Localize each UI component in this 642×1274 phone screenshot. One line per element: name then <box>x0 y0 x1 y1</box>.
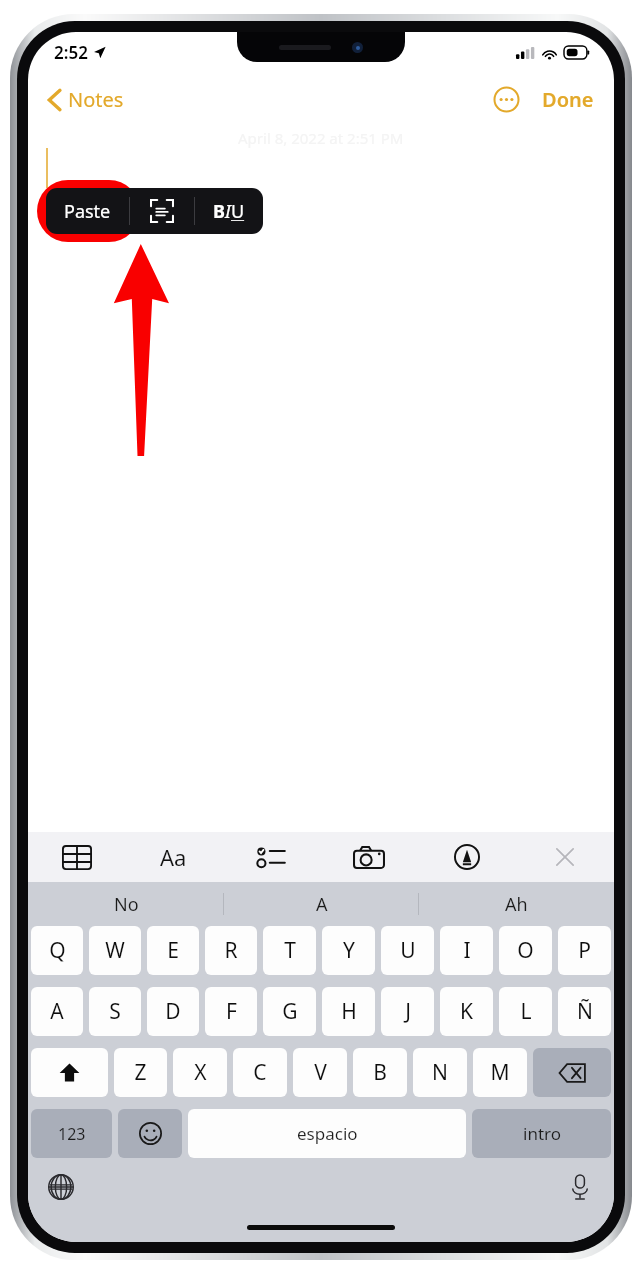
button[interactable]: No <box>28 882 224 926</box>
staticText: U <box>231 199 245 224</box>
button[interactable]: L <box>499 987 552 1036</box>
button[interactable]: Shift <box>31 1048 108 1097</box>
staticText: A <box>316 892 328 917</box>
button[interactable]: J <box>381 987 434 1036</box>
button[interactable]: Camera <box>320 832 418 882</box>
button[interactable]: A <box>31 987 83 1036</box>
button[interactable]: Dictate <box>564 1168 596 1206</box>
staticText: M <box>490 1058 510 1087</box>
staticText: W <box>105 936 125 965</box>
staticText: F <box>226 997 237 1026</box>
button[interactable]: Markup <box>418 832 516 882</box>
button[interactable]: G <box>263 987 316 1036</box>
staticText: S <box>109 997 121 1026</box>
button[interactable]: Ñ <box>558 987 611 1036</box>
staticText: X <box>194 1058 207 1087</box>
staticText: Z <box>134 1058 147 1087</box>
button[interactable]: V <box>293 1048 347 1097</box>
button[interactable]: Format <box>125 832 222 882</box>
button[interactable]: intro <box>472 1109 611 1158</box>
staticText: Notes <box>68 86 124 113</box>
staticText: K <box>460 997 473 1026</box>
staticText: E <box>167 936 179 965</box>
staticText: Aa <box>160 842 187 872</box>
button[interactable]: P <box>558 926 611 975</box>
button[interactable]: H <box>322 987 375 1036</box>
button[interactable]: Done <box>538 82 598 117</box>
staticText: L <box>520 997 532 1026</box>
staticText: Paste <box>64 199 111 224</box>
staticText: A <box>50 997 64 1026</box>
button[interactable]: 123 <box>31 1109 112 1158</box>
button[interactable]: S <box>89 987 141 1036</box>
staticText: R <box>224 936 238 965</box>
button[interactable]: B <box>195 188 263 234</box>
button[interactable]: Q <box>31 926 83 975</box>
staticText: G <box>282 997 298 1026</box>
button[interactable]: M <box>473 1048 527 1097</box>
staticText: 2:52 <box>54 41 88 64</box>
staticText: Ñ <box>577 997 593 1026</box>
staticText: N <box>432 1058 448 1087</box>
button[interactable]: Change keyboard <box>42 1168 80 1206</box>
button[interactable]: Checklist <box>222 832 320 882</box>
button[interactable]: Emoji <box>118 1109 182 1158</box>
button[interactable]: Table <box>28 832 125 882</box>
button[interactable]: T <box>263 926 316 975</box>
staticText: H <box>341 997 357 1026</box>
button[interactable]: O <box>499 926 552 975</box>
button[interactable]: D <box>147 987 199 1036</box>
staticText: O <box>517 936 534 965</box>
button[interactable]: W <box>89 926 141 975</box>
button[interactable]: Y <box>322 926 375 975</box>
staticText: April 8, 2022 at 2:51 PM <box>238 128 404 148</box>
button[interactable]: X <box>173 1048 227 1097</box>
staticText: B <box>213 199 225 224</box>
staticText: Y <box>343 936 355 965</box>
button[interactable]: E <box>147 926 199 975</box>
staticText: T <box>284 936 296 965</box>
button[interactable]: A <box>224 882 419 926</box>
staticText: intro <box>523 1122 561 1145</box>
staticText: espacio <box>297 1122 358 1145</box>
staticText: P <box>578 936 591 965</box>
button[interactable]: I <box>440 926 493 975</box>
button[interactable]: C <box>233 1048 287 1097</box>
button[interactable]: Backspace <box>533 1048 611 1097</box>
button[interactable]: espacio <box>188 1109 466 1158</box>
button[interactable]: U <box>381 926 434 975</box>
button[interactable]: Scan text <box>130 188 194 234</box>
staticText: I <box>225 199 231 224</box>
staticText: No <box>114 892 139 917</box>
staticText: Ah <box>505 892 528 917</box>
button[interactable]: More options <box>489 82 524 117</box>
staticText: J <box>405 997 411 1026</box>
button[interactable]: N <box>413 1048 467 1097</box>
button[interactable]: Ah <box>419 882 614 926</box>
button[interactable]: F <box>205 987 257 1036</box>
button[interactable]: Z <box>114 1048 167 1097</box>
staticText: U <box>400 936 416 965</box>
button[interactable]: Paste <box>46 188 129 234</box>
button[interactable]: B <box>353 1048 407 1097</box>
staticText: I <box>463 936 471 965</box>
button[interactable]: Close <box>516 832 614 882</box>
staticText: Q <box>49 936 66 965</box>
staticText: D <box>165 997 181 1026</box>
button[interactable]: R <box>205 926 257 975</box>
staticText: V <box>314 1058 327 1087</box>
staticText: B <box>373 1058 387 1087</box>
staticText: 123 <box>58 1123 86 1145</box>
button[interactable]: Notes <box>40 82 132 117</box>
button[interactable]: K <box>440 987 493 1036</box>
staticText: C <box>253 1058 267 1087</box>
staticText: Done <box>542 86 594 113</box>
